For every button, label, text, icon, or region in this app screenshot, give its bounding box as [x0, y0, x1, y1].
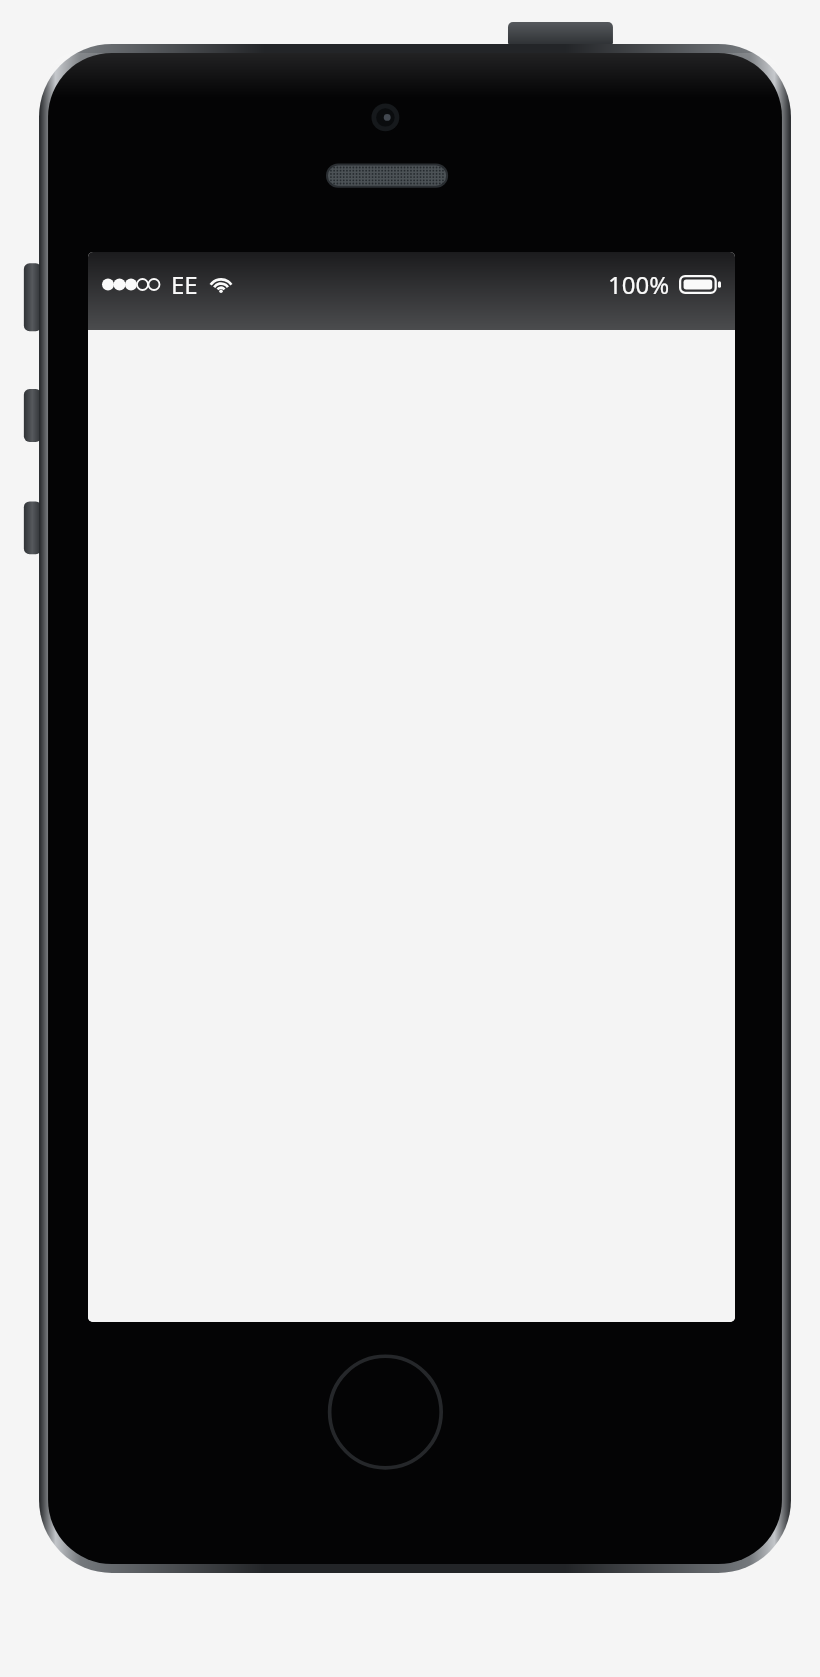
- button[interactable]: Battery full, 100 percent: [679, 275, 721, 294]
- button[interactable]: Cellular signal strength: [102, 277, 160, 292]
- staticText: EE: [171, 268, 198, 301]
- button[interactable]: Wi-Fi connected: [209, 276, 233, 293]
- staticText: 100%: [608, 268, 670, 301]
